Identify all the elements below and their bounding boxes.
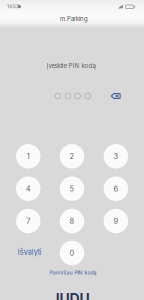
button[interactable]: 2 [60, 144, 84, 169]
staticText: 4 [26, 184, 31, 193]
button[interactable]: 4 [16, 176, 41, 201]
button[interactable]: 3 [104, 144, 128, 169]
staticText: 5 [69, 184, 74, 193]
staticText: JUDU [51, 290, 89, 300]
staticText: 3 [113, 152, 118, 161]
staticText: m.Parking [60, 15, 88, 22]
staticText: 1 [27, 152, 30, 161]
staticText: 2 [69, 152, 74, 161]
button[interactable]: Išvalyti [13, 244, 47, 260]
staticText: Išvalyti [18, 248, 42, 256]
staticText: 14:53 [7, 4, 19, 9]
staticText: 6 [113, 184, 118, 193]
staticText: 8 [69, 217, 74, 226]
staticText: Įveskite PIN kodą [46, 62, 95, 69]
staticText: Pamiršau PIN kodą [49, 269, 96, 276]
button[interactable]: 8 [60, 209, 84, 233]
button[interactable]: 9 [104, 209, 128, 233]
button[interactable]: 6 [104, 176, 128, 201]
staticText: 9 [113, 217, 118, 226]
staticText: 7 [26, 217, 30, 226]
button[interactable]: Pamiršau PIN kodą [43, 267, 103, 277]
button[interactable]: 0 [60, 241, 84, 265]
button[interactable]: 7 [16, 209, 41, 233]
button[interactable]: 1 [16, 144, 41, 169]
staticText: 0 [69, 248, 74, 257]
button[interactable]: Delete [105, 88, 127, 104]
button[interactable]: 5 [60, 176, 84, 201]
